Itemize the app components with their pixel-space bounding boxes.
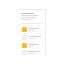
button[interactable] xyxy=(21,26,43,33)
button[interactable] xyxy=(21,34,43,41)
button[interactable] xyxy=(21,13,43,20)
button[interactable] xyxy=(21,42,43,49)
button[interactable] xyxy=(21,50,43,55)
